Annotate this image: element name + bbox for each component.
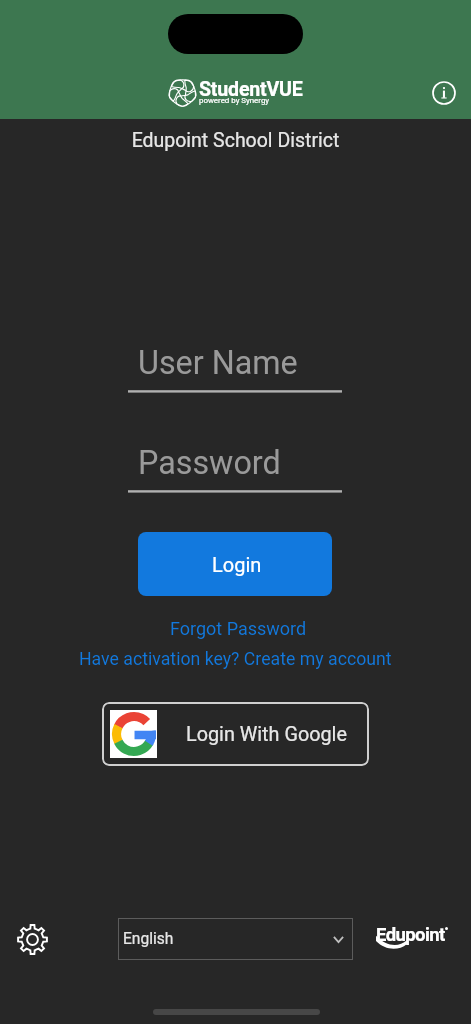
button[interactable]: Edupoint xyxy=(376,924,445,946)
staticText: Have activation key? Create my account xyxy=(79,649,392,670)
staticText: Edupoint xyxy=(376,924,445,946)
button[interactable]: Settings xyxy=(14,921,51,958)
staticText: Login With Google xyxy=(186,723,347,746)
staticText: Password xyxy=(138,444,281,482)
button[interactable]: Have activation key? Create my account xyxy=(73,646,398,673)
staticText: powered by Synergy xyxy=(199,96,270,105)
staticText: English xyxy=(123,930,174,948)
staticText: Edupoint School District xyxy=(0,129,471,152)
button[interactable]: Password xyxy=(138,437,342,489)
button[interactable]: Forgot Password xyxy=(164,615,313,642)
staticText: Forgot Password xyxy=(170,618,307,639)
button[interactable]: Login With Google xyxy=(102,702,369,766)
button[interactable]: Information xyxy=(430,79,458,107)
staticText: StudentVUE xyxy=(199,78,303,101)
staticText: User Name xyxy=(138,344,298,382)
staticText: Login xyxy=(212,553,262,576)
button[interactable]: Login xyxy=(138,532,332,596)
button[interactable]: User Name xyxy=(138,337,342,389)
button[interactable]: English xyxy=(118,918,353,960)
